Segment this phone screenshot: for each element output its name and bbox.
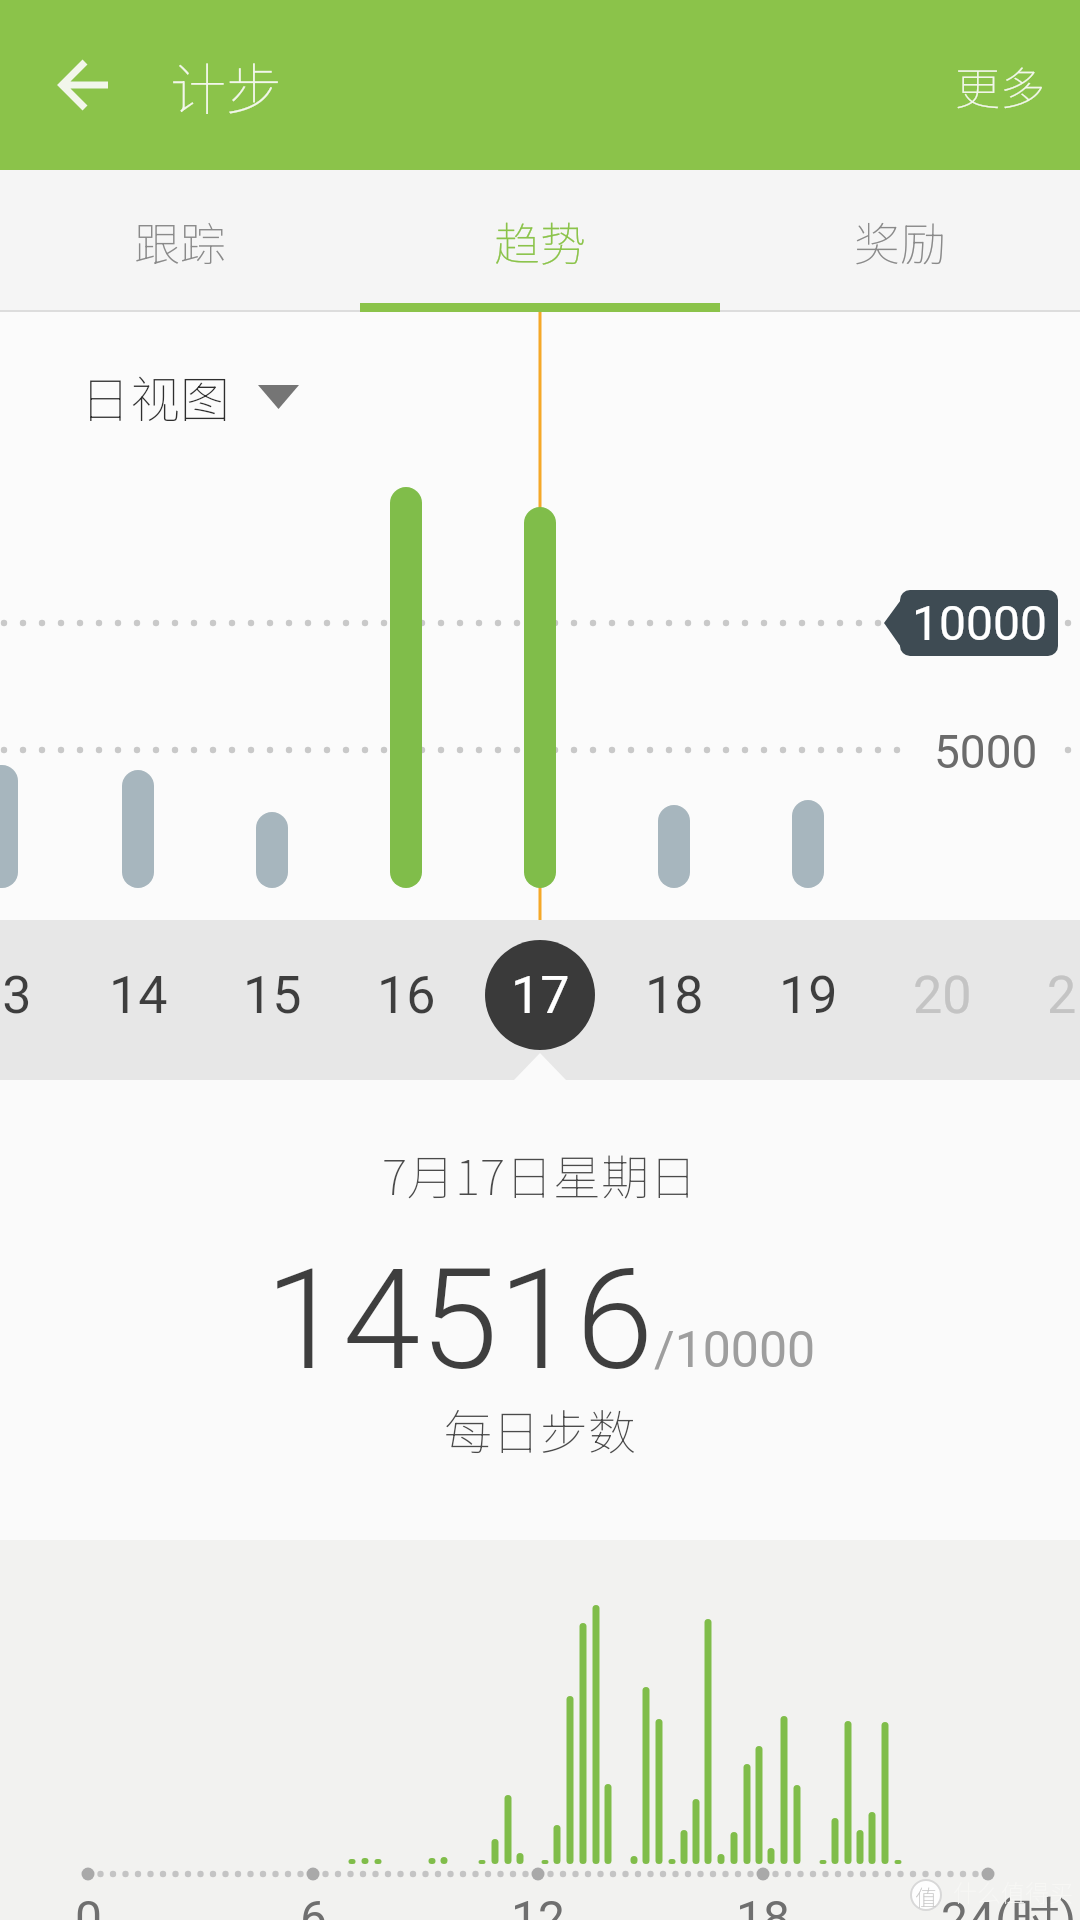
button[interactable]: 19 (741, 920, 875, 1070)
button[interactable]: 17 (473, 920, 607, 1070)
button[interactable]: 趋势 (360, 170, 720, 312)
staticText: 14 (109, 965, 168, 1026)
button[interactable]: 更多 (955, 53, 1080, 118)
staticText: 14516 (265, 1238, 654, 1402)
staticText: 每日步数 (444, 1394, 637, 1464)
staticText: 10000 (912, 595, 1047, 651)
button[interactable] (35, 35, 135, 135)
button[interactable]: 跟踪 (0, 170, 360, 312)
staticText: 什么值得买 (953, 1874, 1073, 1909)
staticText: 18 (645, 965, 704, 1026)
staticText: 13 (0, 965, 32, 1026)
staticText: 17 (511, 965, 570, 1026)
staticText: 0 (75, 1890, 102, 1920)
button[interactable]: 13 (0, 920, 69, 1070)
staticText: 跟踪 (134, 208, 226, 275)
staticText: 更多 (955, 53, 1046, 118)
button[interactable]: 奖励 (720, 170, 1080, 312)
button[interactable]: 16 (339, 920, 473, 1070)
staticText: /10000 (654, 1321, 816, 1380)
button[interactable]: 日视图 (80, 360, 230, 424)
button[interactable]: 18 (607, 920, 741, 1070)
staticText: 12 (511, 1890, 565, 1920)
staticText: 16 (377, 965, 436, 1026)
staticText: 19 (779, 965, 838, 1026)
staticText: 5000 (934, 725, 1038, 779)
staticText: 21 (1047, 965, 1080, 1026)
staticText: 值 (915, 1880, 938, 1912)
button[interactable]: 21 (1009, 920, 1080, 1070)
staticText: 奖励 (854, 208, 946, 275)
staticText: 24(时) (941, 1890, 1077, 1920)
button[interactable]: 20 (875, 920, 1009, 1070)
staticText: 计步 (170, 45, 282, 126)
staticText: 18 (736, 1890, 790, 1920)
button[interactable]: 14 (71, 920, 205, 1070)
staticText: 6 (300, 1890, 327, 1920)
staticText: 日视图 (80, 360, 230, 424)
staticText: 7月17日星期日 (382, 1139, 698, 1209)
staticText: 15 (243, 965, 302, 1026)
staticText: 20 (913, 965, 972, 1026)
staticText: 趋势 (494, 208, 586, 275)
button[interactable]: 15 (205, 920, 339, 1070)
